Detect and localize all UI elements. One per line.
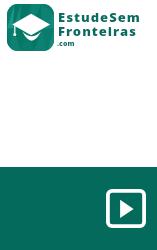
staticText: EstudeSem [58,8,141,26]
staticText: .com [57,39,75,49]
staticText: Fronteiras [58,22,137,40]
button[interactable]: EstudeSemFronteiras logo [7,4,54,51]
button[interactable]: Play video [106,189,146,228]
